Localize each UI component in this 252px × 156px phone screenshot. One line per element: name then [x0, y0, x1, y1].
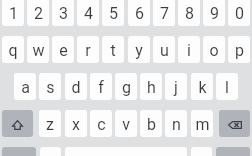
- staticText: t: [110, 41, 116, 60]
- button[interactable]: 0: [228, 0, 250, 26]
- staticText: k: [198, 78, 207, 97]
- button[interactable]: Shift: [2, 110, 33, 137]
- button[interactable]: Symbols: [2, 147, 36, 156]
- staticText: 6: [135, 4, 144, 23]
- button[interactable]: i: [178, 36, 200, 63]
- staticText: 9: [210, 4, 219, 23]
- staticText: e: [59, 41, 68, 60]
- staticText: 0: [235, 4, 244, 23]
- button[interactable]: g: [115, 73, 137, 100]
- button[interactable]: r: [77, 36, 99, 63]
- staticText: l: [225, 78, 229, 97]
- button[interactable]: d: [65, 73, 87, 100]
- button[interactable]: n: [165, 110, 187, 137]
- staticText: 7: [160, 4, 169, 23]
- staticText: m: [195, 115, 210, 134]
- button[interactable]: 6: [128, 0, 150, 26]
- staticText: n: [172, 115, 181, 134]
- staticText: 2: [34, 4, 43, 23]
- button[interactable]: p: [228, 36, 250, 63]
- button[interactable]: q: [2, 36, 24, 63]
- button[interactable]: 9: [203, 0, 225, 26]
- button[interactable]: 7: [153, 0, 175, 26]
- button[interactable]: Enter: [216, 147, 250, 156]
- button[interactable]: .: [191, 147, 212, 156]
- staticText: y: [135, 41, 143, 60]
- button[interactable]: e: [52, 36, 74, 63]
- button[interactable]: x: [65, 110, 87, 137]
- button[interactable]: s: [39, 73, 61, 100]
- staticText: v: [122, 115, 130, 134]
- button[interactable]: a: [14, 73, 36, 100]
- staticText: w: [32, 41, 45, 60]
- button[interactable]: j: [165, 73, 187, 100]
- staticText: g: [122, 78, 131, 97]
- button[interactable]: u: [153, 36, 175, 63]
- button[interactable]: o: [203, 36, 225, 63]
- staticText: x: [72, 115, 80, 134]
- staticText: d: [71, 78, 81, 97]
- staticText: 3: [59, 4, 68, 23]
- button[interactable]: f: [90, 73, 112, 100]
- staticText: a: [21, 78, 30, 97]
- staticText: p: [235, 41, 244, 60]
- button[interactable]: 1: [2, 0, 24, 26]
- button[interactable]: Backspace: [219, 110, 250, 137]
- button[interactable]: y: [128, 36, 150, 63]
- staticText: f: [98, 78, 104, 97]
- staticText: 5: [109, 4, 118, 23]
- button[interactable]: b: [140, 110, 162, 137]
- staticText: i: [187, 41, 191, 60]
- staticText: q: [8, 41, 18, 60]
- staticText: o: [209, 41, 219, 60]
- button[interactable]: l: [216, 73, 238, 100]
- button[interactable]: ,: [40, 147, 61, 156]
- staticText: h: [147, 78, 156, 97]
- staticText: j: [174, 78, 178, 97]
- staticText: u: [160, 41, 169, 60]
- staticText: r: [85, 41, 91, 60]
- button[interactable]: k: [191, 73, 213, 100]
- staticText: c: [97, 115, 106, 134]
- button[interactable]: m: [191, 110, 213, 137]
- button[interactable]: v: [115, 110, 137, 137]
- button[interactable]: t: [102, 36, 124, 63]
- staticText: 4: [84, 4, 93, 23]
- button[interactable]: 5: [102, 0, 124, 26]
- button[interactable]: 2: [27, 0, 49, 26]
- staticText: s: [46, 78, 55, 97]
- staticText: 8: [185, 4, 194, 23]
- button[interactable]: 8: [178, 0, 200, 26]
- button[interactable]: w: [27, 36, 49, 63]
- staticText: 1: [9, 4, 18, 23]
- button[interactable]: c: [90, 110, 112, 137]
- staticText: b: [147, 115, 156, 134]
- button[interactable]: h: [140, 73, 162, 100]
- button[interactable]: 4: [77, 0, 99, 26]
- staticText: z: [46, 115, 54, 134]
- button[interactable]: z: [39, 110, 61, 137]
- button[interactable]: 3: [52, 0, 74, 26]
